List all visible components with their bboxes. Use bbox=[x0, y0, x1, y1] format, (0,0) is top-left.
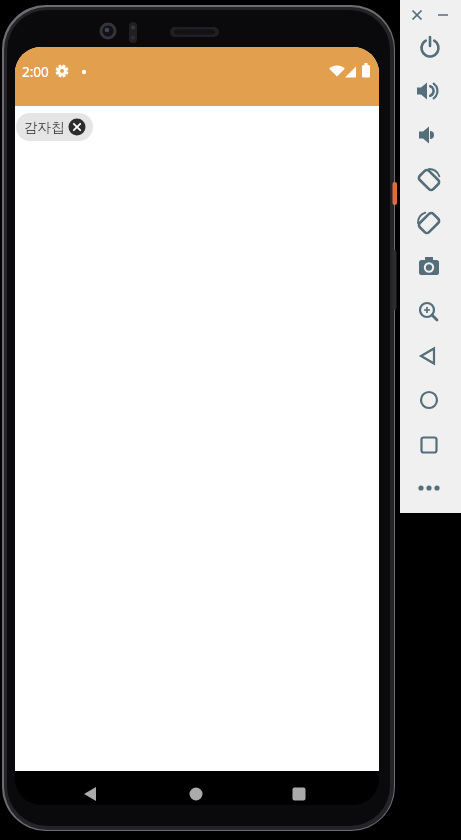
button[interactable] bbox=[68, 118, 86, 136]
button[interactable] bbox=[406, 4, 428, 26]
button[interactable] bbox=[410, 73, 446, 109]
button[interactable] bbox=[412, 30, 448, 66]
button[interactable] bbox=[432, 4, 454, 26]
button[interactable] bbox=[411, 338, 447, 374]
button[interactable] bbox=[274, 774, 324, 804]
staticText: 2:00 bbox=[22, 63, 49, 81]
button[interactable] bbox=[411, 249, 447, 285]
button[interactable] bbox=[171, 774, 221, 804]
button[interactable] bbox=[410, 117, 446, 153]
button[interactable] bbox=[411, 427, 447, 463]
button[interactable] bbox=[411, 162, 447, 198]
button[interactable] bbox=[411, 382, 447, 418]
staticText: 감자칩 bbox=[24, 119, 65, 136]
button[interactable] bbox=[411, 470, 447, 506]
button[interactable] bbox=[411, 294, 447, 330]
button[interactable] bbox=[70, 774, 120, 804]
button[interactable]: 감자칩 bbox=[16, 113, 93, 141]
button[interactable] bbox=[411, 205, 447, 241]
